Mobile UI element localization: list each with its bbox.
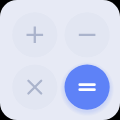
button[interactable]: Subtract [65, 12, 110, 57]
button[interactable]: Equals [65, 65, 110, 110]
button[interactable]: Add [12, 12, 57, 57]
button[interactable]: Multiply [12, 65, 57, 110]
